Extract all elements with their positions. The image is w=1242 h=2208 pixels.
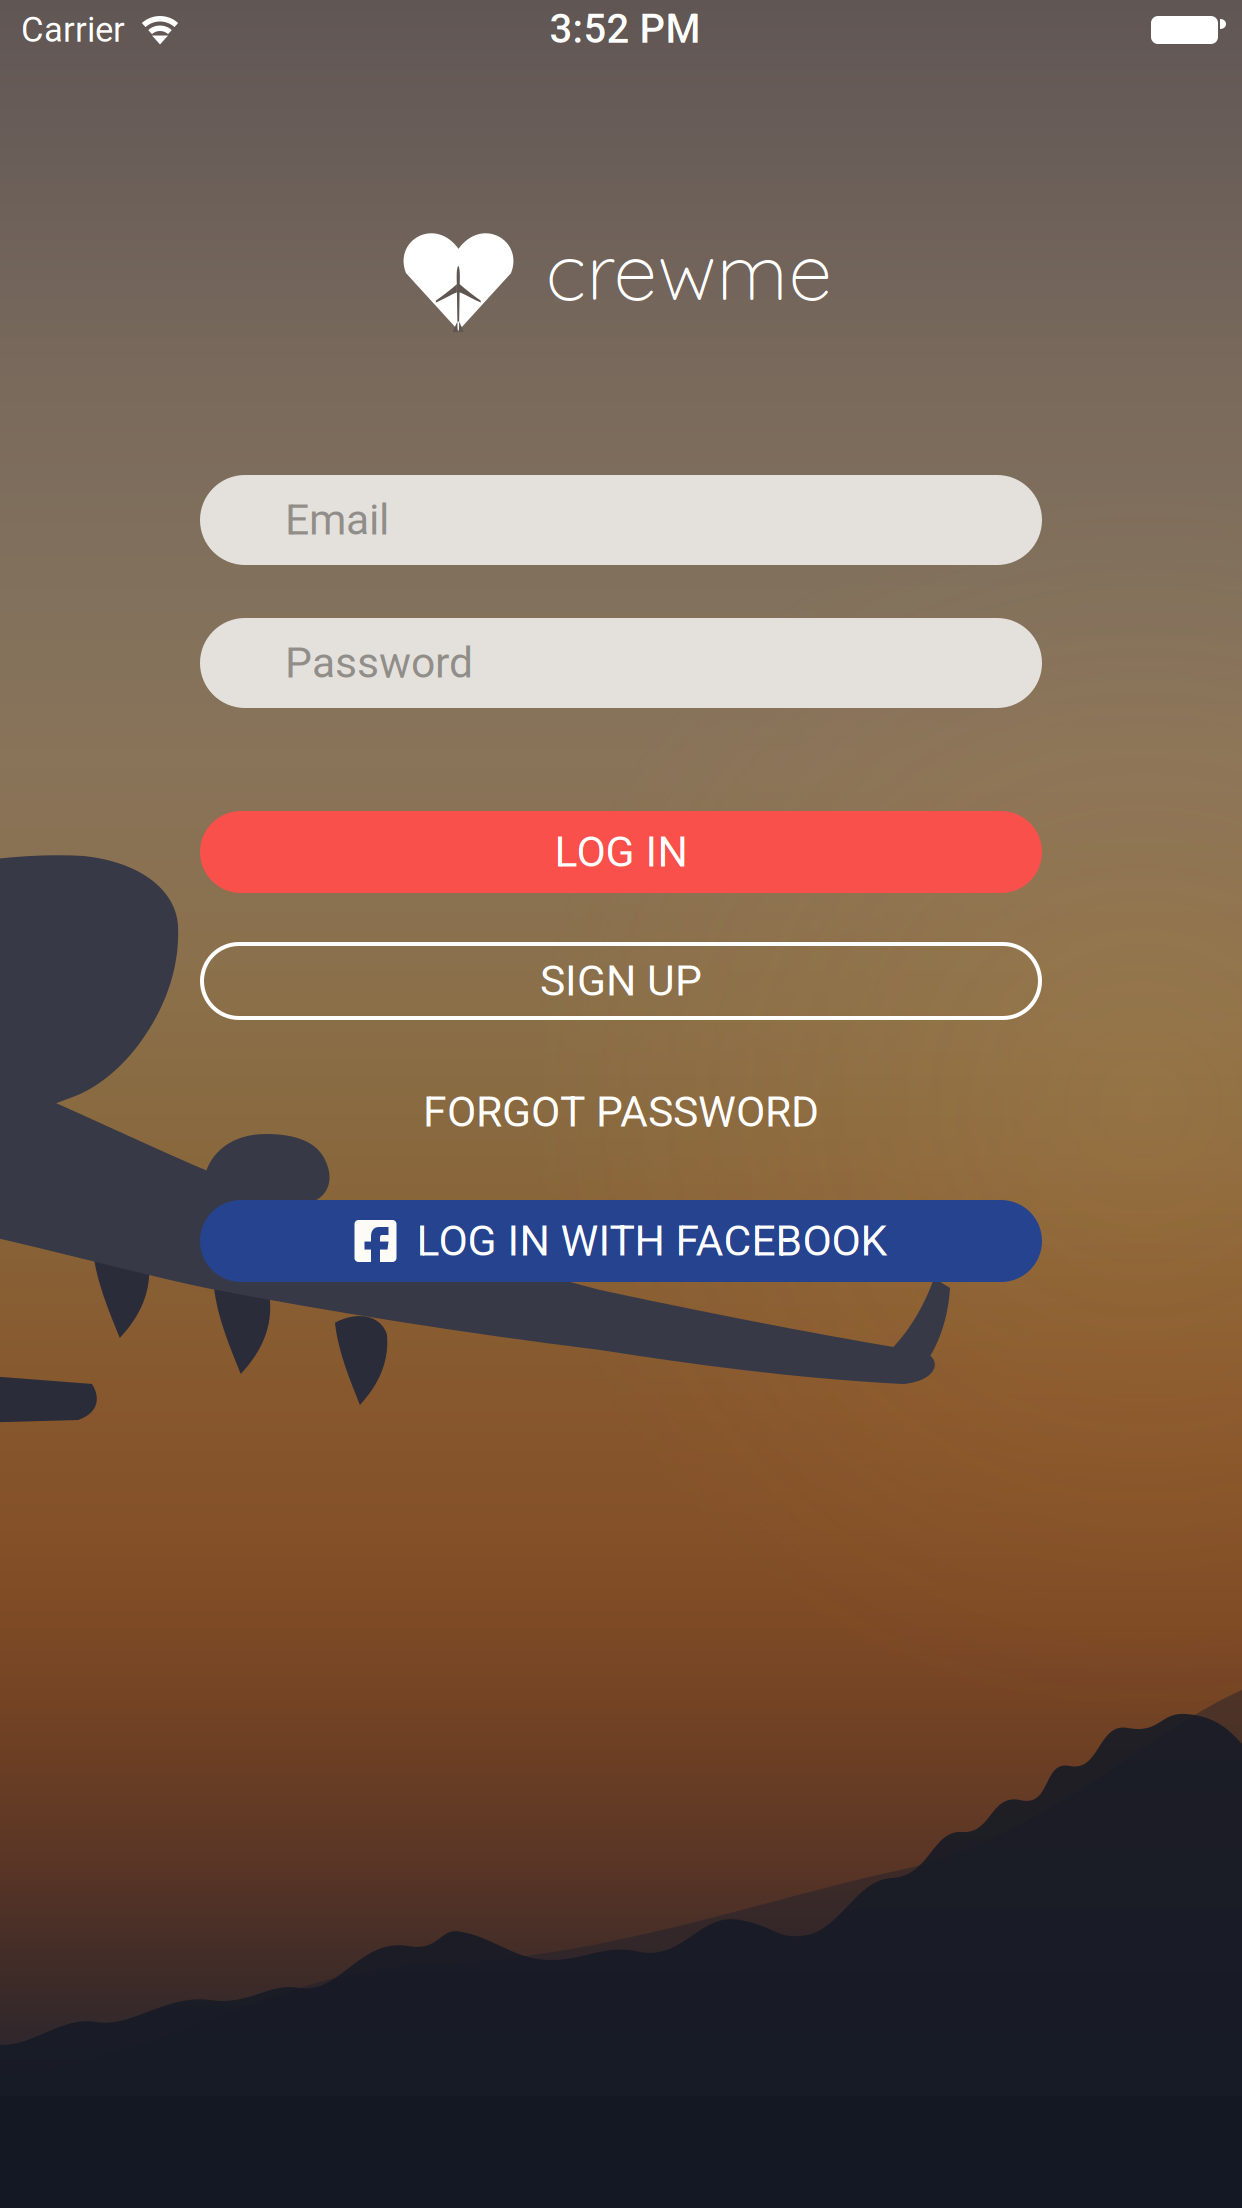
button[interactable]: LOG IN bbox=[200, 811, 1042, 893]
staticText: FORGOT PASSWORD bbox=[423, 1087, 819, 1137]
staticText: 3:52 PM bbox=[549, 6, 700, 52]
staticText: LOG IN bbox=[554, 827, 687, 877]
staticText: LOG IN WITH FACEBOOK bbox=[416, 1216, 887, 1266]
button[interactable]: SIGN UP bbox=[202, 944, 1040, 1018]
staticText: Password bbox=[285, 638, 473, 688]
staticText: crewme bbox=[545, 221, 832, 320]
staticText: Carrier bbox=[21, 10, 125, 50]
staticText: Email bbox=[285, 495, 389, 545]
button[interactable]: Email bbox=[200, 475, 1042, 565]
button[interactable]: Password bbox=[200, 618, 1042, 708]
button[interactable]: FORGOT PASSWORD bbox=[200, 1086, 1042, 1138]
button[interactable]: LOG IN WITH FACEBOOK bbox=[200, 1200, 1042, 1282]
staticText: SIGN UP bbox=[540, 956, 702, 1006]
